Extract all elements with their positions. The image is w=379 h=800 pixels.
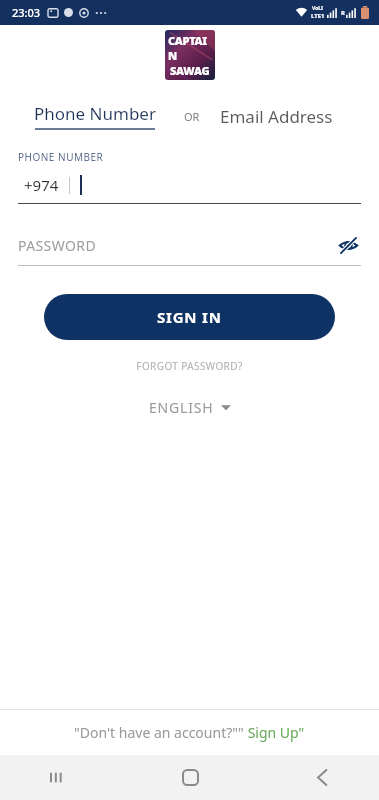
staticText: Phone Number (34, 102, 156, 125)
button[interactable]: "Don't have an account?"" (0, 710, 379, 755)
button[interactable]: Email Address (216, 105, 337, 128)
staticText: +974 (24, 175, 59, 195)
button[interactable]: ENGLISH (139, 394, 241, 421)
staticText: VoLI (312, 5, 324, 12)
staticText: PHONE NUMBER (18, 150, 104, 164)
staticText: R (341, 9, 345, 17)
staticText: FORGOT PASSWORD? (136, 359, 243, 373)
staticText: SAWAG (170, 63, 210, 78)
staticText: Sign Up" (244, 723, 305, 742)
staticText: "Don't have an account?"" (74, 723, 244, 742)
staticText: OR (184, 109, 200, 124)
staticText: CAPTAIN (168, 33, 212, 63)
staticText: LTE1 (311, 12, 325, 20)
button[interactable]: Phone Number (20, 102, 170, 130)
staticText: 23:03 (12, 5, 41, 20)
staticText: ENGLISH (149, 398, 214, 417)
staticText: Email Address (220, 105, 333, 128)
button[interactable]: +974 (18, 173, 361, 197)
staticText: SIGN IN (157, 307, 222, 327)
button[interactable]: FORGOT PASSWORD? (126, 356, 253, 376)
button[interactable]: Back (299, 755, 345, 800)
button[interactable]: Show password (335, 232, 361, 258)
button[interactable]: SIGN IN (44, 294, 335, 340)
staticText: PASSWORD (18, 236, 335, 255)
button[interactable]: Home (167, 755, 213, 800)
button[interactable]: Recent apps (34, 755, 80, 800)
